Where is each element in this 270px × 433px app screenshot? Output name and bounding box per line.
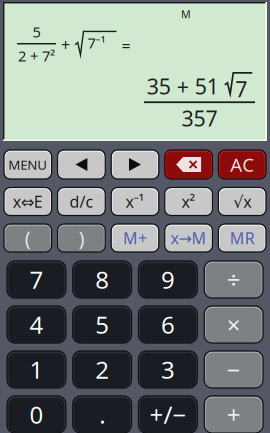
staticText: 2 — [95, 354, 109, 385]
button[interactable]: M+ — [111, 224, 159, 252]
staticText: 6 — [161, 309, 175, 340]
button[interactable]: x→M — [165, 224, 212, 252]
button[interactable]: 4 — [7, 306, 66, 343]
staticText: x⁻¹ — [125, 191, 144, 212]
button[interactable]: × — [204, 306, 263, 343]
staticText: + — [227, 399, 241, 430]
staticText: M — [181, 7, 191, 21]
staticText: d/c — [69, 191, 93, 212]
button[interactable]: ( — [4, 224, 52, 252]
staticText: 9 — [161, 264, 175, 295]
button[interactable]: 9 — [138, 261, 197, 298]
staticText: MENU — [8, 156, 47, 173]
staticText: 357 — [181, 104, 217, 132]
button[interactable]: + — [204, 396, 263, 433]
staticText: = — [121, 35, 130, 56]
button[interactable]: 1 — [7, 351, 66, 388]
button[interactable]: . — [73, 396, 132, 433]
staticText: 7 — [235, 75, 247, 103]
staticText: − — [227, 354, 241, 385]
button[interactable]: Right — [111, 150, 159, 179]
staticText: ÷ — [227, 264, 241, 295]
staticText: M+ — [123, 227, 147, 249]
staticText: 5 — [95, 309, 109, 340]
staticText: ) — [78, 225, 84, 251]
staticText: ( — [25, 225, 31, 251]
staticText: × — [227, 309, 241, 340]
button[interactable]: ) — [58, 224, 105, 252]
staticText: + — [61, 34, 70, 55]
staticText: x⇔E — [13, 191, 43, 212]
button[interactable]: x² — [165, 187, 212, 215]
staticText: 4 — [29, 309, 43, 340]
staticText: x² — [182, 191, 196, 212]
button[interactable]: √x — [218, 187, 266, 215]
button[interactable]: 5 — [73, 306, 132, 343]
staticText: 5 — [32, 22, 40, 41]
button[interactable]: AC — [218, 150, 266, 179]
staticText: √x — [233, 191, 251, 212]
button[interactable]: MR — [218, 224, 266, 252]
staticText: 3 — [161, 354, 175, 385]
button[interactable]: 8 — [73, 261, 132, 298]
staticText: . — [99, 399, 105, 430]
staticText: 7⁻¹ — [87, 33, 105, 53]
button[interactable]: 0 — [7, 396, 66, 433]
staticText: MR — [230, 227, 255, 249]
staticText: +/− — [149, 399, 186, 430]
staticText: 1 — [29, 354, 43, 385]
button[interactable]: Left — [58, 150, 105, 179]
staticText: 8 — [95, 264, 109, 295]
staticText: 7 — [29, 264, 43, 295]
button[interactable]: x⁻¹ — [111, 187, 159, 215]
button[interactable]: x⇔E — [4, 187, 52, 215]
button[interactable]: 2 — [73, 351, 132, 388]
staticText: 2 + 7² — [18, 46, 55, 65]
button[interactable]: Backspace — [165, 150, 212, 179]
button[interactable]: d/c — [58, 187, 105, 215]
button[interactable]: 3 — [138, 351, 197, 388]
button[interactable]: ÷ — [204, 261, 263, 298]
staticText: 0 — [29, 399, 43, 430]
button[interactable]: 7 — [7, 261, 66, 298]
button[interactable]: − — [204, 351, 263, 388]
button[interactable]: MENU — [4, 150, 52, 179]
staticText: 35 + 51 — [147, 72, 219, 100]
staticText: AC — [230, 152, 254, 177]
staticText: x→M — [171, 227, 207, 249]
button[interactable]: +/− — [138, 396, 197, 433]
button[interactable]: 6 — [138, 306, 197, 343]
